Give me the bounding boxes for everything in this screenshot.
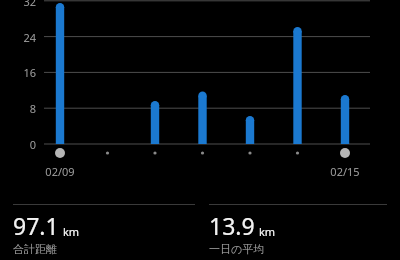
staticText: km (259, 224, 276, 239)
staticText: 一日の平均 (209, 242, 265, 256)
staticText: 0 (8, 137, 36, 152)
staticText: 97.1 (13, 210, 59, 241)
staticText: 13.9 (209, 210, 255, 241)
staticText: 8 (8, 101, 36, 116)
staticText: 32 (8, 0, 36, 9)
button[interactable]: Daily distance bar chart (0, 0, 400, 185)
staticText: 02/15 (320, 164, 370, 179)
staticText: 24 (8, 30, 36, 45)
staticText: 02/09 (35, 164, 85, 179)
staticText: 16 (8, 65, 36, 80)
staticText: 合計距離 (13, 242, 57, 256)
button[interactable]: 97.1 (13, 204, 195, 256)
button[interactable]: 13.9 (209, 204, 387, 256)
staticText: km (63, 224, 80, 239)
